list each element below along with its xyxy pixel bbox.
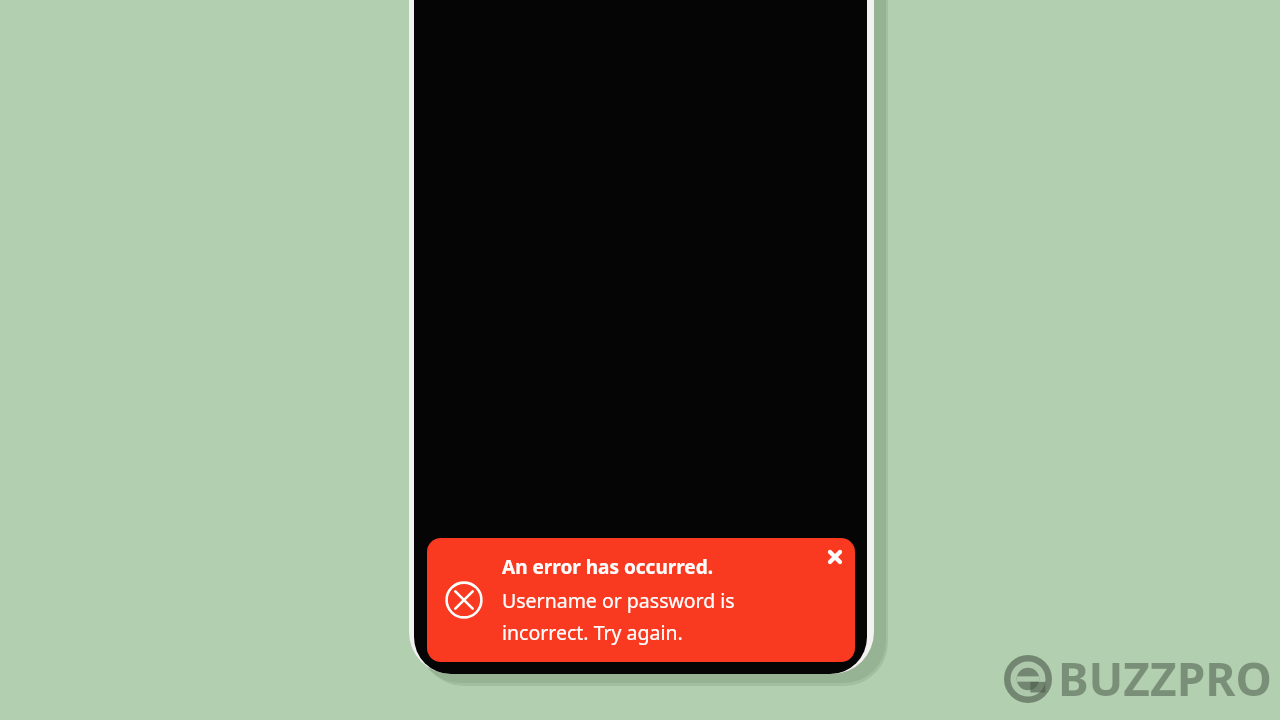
button[interactable]: Dismiss error: [821, 543, 849, 571]
button[interactable]: An error has occurred.: [427, 538, 855, 662]
staticText: Username or password is: [502, 587, 735, 614]
staticText: An error has occurred.: [502, 554, 714, 580]
staticText: BUZZPRO: [1058, 647, 1272, 710]
staticText: incorrect. Try again.: [502, 619, 683, 646]
